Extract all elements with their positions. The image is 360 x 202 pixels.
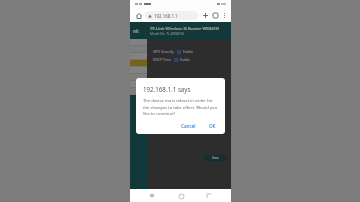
staticText: 192.168.1.1 says (143, 85, 191, 93)
staticText: Model No. TL-WR841N (150, 32, 184, 36)
staticText: 192.168.1.1 (154, 13, 178, 19)
button[interactable]: Recent apps (146, 190, 158, 202)
staticText: Save (212, 156, 219, 160)
button[interactable]: Home (133, 10, 144, 21)
button[interactable]: Home (175, 190, 187, 202)
staticText: The device must reboot in order for the … (143, 98, 220, 116)
button[interactable]: New tab (200, 10, 210, 20)
button[interactable]: Back (203, 190, 215, 202)
staticText: Cancel (181, 123, 196, 129)
staticText: WPS Security (153, 49, 174, 54)
staticText: OK (209, 123, 216, 129)
staticText: TP-Link Wireless N Router WR841N (150, 26, 219, 31)
button[interactable]: 192.168.1.1 (145, 11, 198, 20)
staticText: Enable (180, 58, 191, 62)
button[interactable]: Tabs (210, 10, 220, 20)
button[interactable]: Cancel (177, 121, 200, 131)
button[interactable]: Save (204, 155, 226, 161)
button[interactable]: OK (205, 121, 220, 131)
button[interactable] (130, 81, 147, 87)
button[interactable] (130, 74, 147, 80)
staticText: nk (133, 28, 139, 34)
staticText: Enable (183, 50, 194, 54)
button[interactable] (130, 88, 147, 94)
staticText: DHCP Time (153, 57, 171, 62)
button[interactable]: More options (220, 11, 228, 19)
